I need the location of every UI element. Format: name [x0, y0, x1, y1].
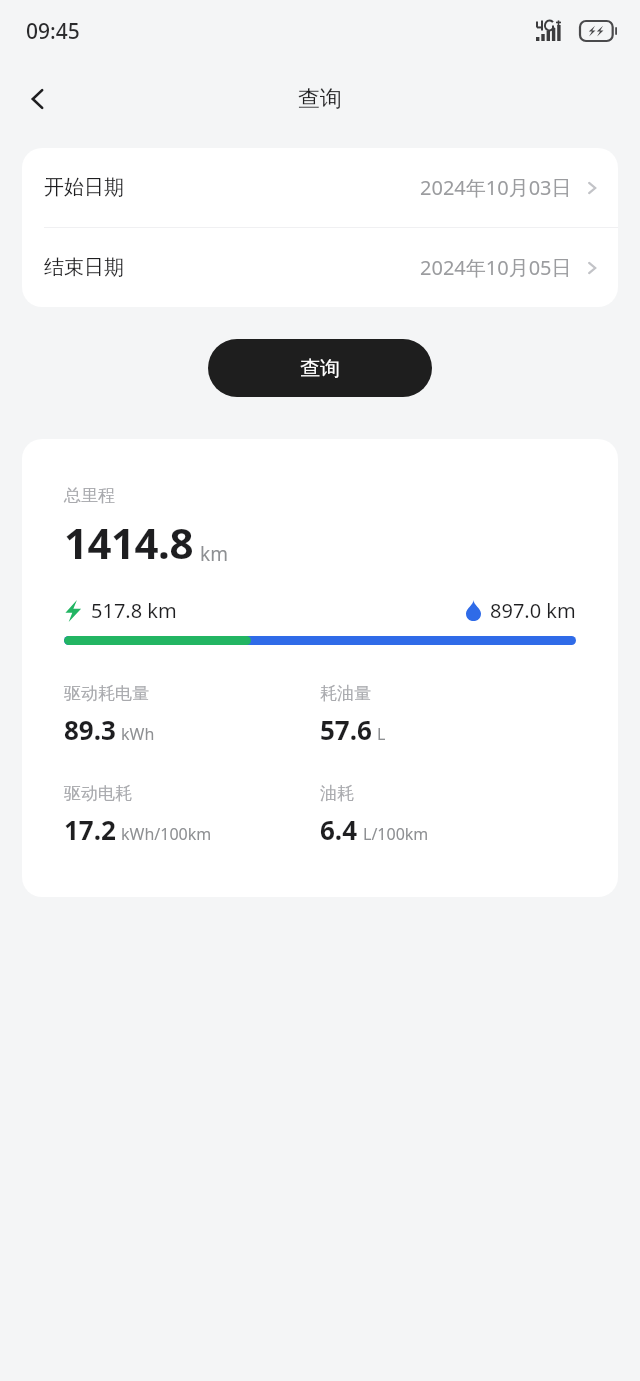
button[interactable]: 开始日期	[22, 148, 618, 227]
staticText: 897.0 km	[490, 597, 576, 624]
staticText: 驱动电耗	[64, 783, 132, 804]
staticText: 驱动耗电量	[64, 683, 149, 704]
staticText: 2024年10月05日	[420, 254, 572, 281]
staticText: L/100km	[363, 823, 429, 845]
button[interactable]: 结束日期	[22, 228, 618, 307]
staticText: 2024年10月03日	[420, 174, 572, 201]
button[interactable]: Back	[12, 73, 64, 125]
staticText: 耗油量	[320, 683, 371, 704]
staticText: L	[377, 723, 386, 745]
staticText: 查询	[300, 356, 340, 381]
staticText: kWh	[121, 723, 155, 745]
staticText: km	[200, 541, 228, 567]
staticText: 结束日期	[44, 255, 124, 280]
staticText: 查询	[298, 85, 342, 113]
staticText: 09:45	[26, 17, 80, 46]
button[interactable]: 查询	[208, 339, 432, 397]
staticText: 57.6	[320, 712, 372, 747]
staticText: 89.3	[64, 712, 116, 747]
staticText: kWh/100km	[121, 823, 212, 845]
staticText: 油耗	[320, 783, 354, 804]
staticText: 总里程	[64, 485, 115, 506]
staticText: 517.8 km	[91, 597, 177, 624]
staticText: 6.4	[320, 812, 358, 847]
staticText: 1414.8	[64, 514, 193, 571]
staticText: 17.2	[64, 812, 116, 847]
staticText: 开始日期	[44, 175, 124, 200]
